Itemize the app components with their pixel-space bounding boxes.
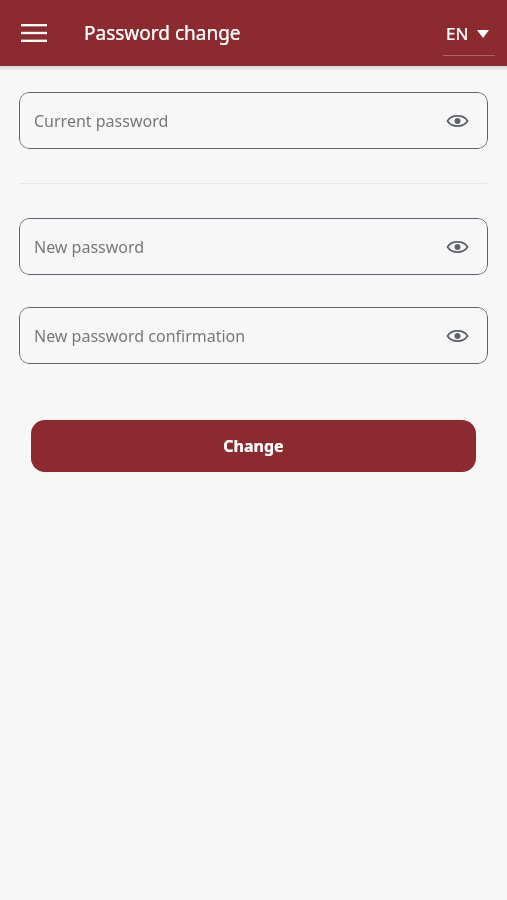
staticText: Change <box>223 435 284 457</box>
button[interactable]: Show password <box>440 104 474 138</box>
staticText: Password change <box>84 20 241 46</box>
staticText: New password <box>34 236 145 258</box>
button[interactable]: New password <box>19 218 488 275</box>
staticText: Current password <box>34 110 169 132</box>
button[interactable]: Show password <box>440 319 474 353</box>
staticText: New password confirmation <box>34 325 246 347</box>
button[interactable]: EN <box>440 16 495 51</box>
button[interactable]: Open navigation menu <box>10 9 58 57</box>
button[interactable]: Current password <box>19 92 488 149</box>
button[interactable]: Change <box>31 420 476 472</box>
button[interactable]: New password confirmation <box>19 307 488 364</box>
button[interactable]: Show password <box>440 230 474 264</box>
staticText: EN <box>446 22 469 45</box>
